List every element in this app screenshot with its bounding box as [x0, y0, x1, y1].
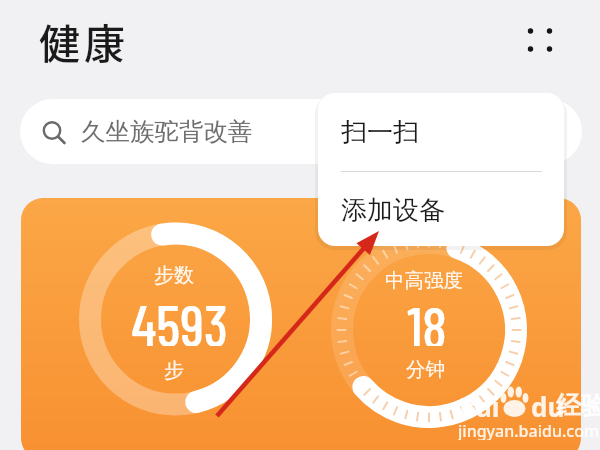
- staticText: 添加设备: [341, 194, 445, 227]
- button[interactable]: 步数: [21, 198, 581, 450]
- staticText: 经验: [556, 390, 600, 419]
- staticText: jingyan.baidu.com: [458, 420, 600, 440]
- staticText: 4593: [131, 290, 228, 346]
- button[interactable]: 添加设备: [318, 175, 564, 246]
- staticText: 分钟: [406, 357, 445, 382]
- staticText: Bai: [459, 389, 500, 419]
- button[interactable]: [518, 18, 562, 62]
- staticText: 中高强度: [385, 268, 463, 293]
- staticText: 健康: [39, 11, 129, 70]
- staticText: 扫一扫: [341, 116, 419, 149]
- staticText: 步: [164, 358, 184, 383]
- button[interactable]: 久坐族驼背改善: [20, 99, 582, 164]
- staticText: 18: [407, 292, 447, 346]
- button[interactable]: 扫一扫: [318, 93, 564, 171]
- staticText: du: [531, 389, 565, 419]
- staticText: 步数: [154, 263, 194, 288]
- staticText: 久坐族驼背改善: [81, 116, 253, 147]
